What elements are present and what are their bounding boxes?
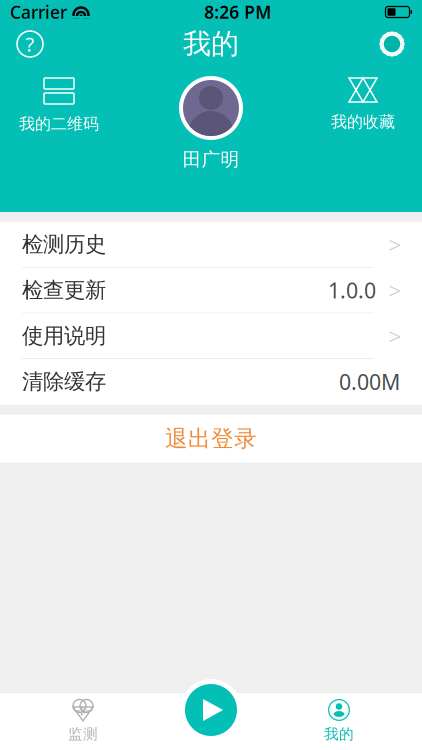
staticText: 检查更新 (22, 277, 106, 303)
staticText: 退出登录 (165, 425, 257, 453)
staticText: 我的二维码 (19, 114, 99, 134)
staticText: 0.00M (339, 367, 400, 396)
staticText: 使用说明 (22, 323, 106, 349)
staticText: 8:26 PM (204, 0, 271, 23)
button[interactable]: 我的二维码 (4, 76, 114, 134)
staticText: > (388, 275, 401, 305)
button[interactable]: 我的 (256, 692, 422, 750)
button[interactable]: 开始检测 (180, 679, 242, 741)
button[interactable]: 检测历史 (0, 222, 422, 268)
button[interactable]: 我的收藏 (308, 76, 418, 132)
staticText: 田广明 (182, 148, 239, 171)
button[interactable]: 退出登录 (0, 415, 422, 463)
staticText: 我的收藏 (331, 112, 395, 132)
staticText: 我的 (324, 725, 354, 743)
staticText: ? (25, 31, 34, 57)
button[interactable]: 设置 (370, 24, 414, 64)
button[interactable]: 帮助 (8, 24, 52, 64)
button[interactable]: 田广明 (179, 76, 243, 171)
button[interactable]: 检查更新 (0, 268, 422, 313)
staticText: > (388, 321, 401, 351)
button[interactable]: 清除缓存 (0, 359, 422, 405)
staticText: 我的 (183, 27, 239, 61)
button[interactable]: 监测 (0, 692, 166, 750)
staticText: > (388, 229, 401, 259)
staticText: 检测历史 (22, 231, 106, 258)
staticText: 监测 (68, 725, 98, 743)
staticText: Carrier (10, 0, 67, 23)
staticText: 清除缓存 (22, 368, 106, 395)
staticText: 1.0.0 (328, 276, 376, 304)
button[interactable]: 使用说明 (0, 313, 422, 359)
